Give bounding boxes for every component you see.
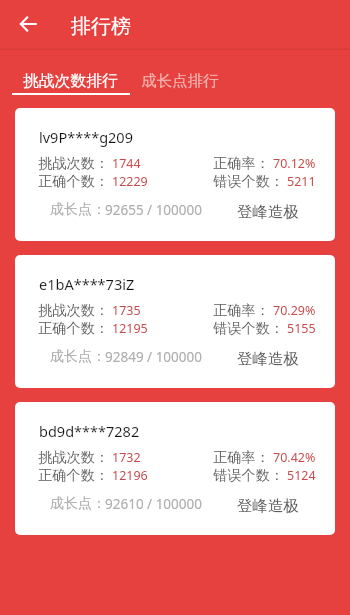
staticText: 5124: [287, 467, 316, 484]
staticText: lv9P****g209: [39, 127, 133, 147]
staticText: bd9d****7282: [39, 421, 140, 441]
staticText: 92849 / 100000: [105, 348, 202, 366]
staticText: 登峰造极: [237, 496, 299, 516]
staticText: e1bA****73iZ: [39, 274, 135, 294]
staticText: 92655 / 100000: [105, 201, 202, 219]
button[interactable]: Back: [8, 4, 48, 44]
button[interactable]: e1bA****73iZ: [15, 255, 335, 388]
staticText: 12195: [112, 320, 148, 337]
button[interactable]: 成长点排行: [132, 50, 228, 94]
staticText: 92610 / 100000: [105, 495, 202, 513]
staticText: 挑战次数：: [38, 301, 109, 319]
staticText: 挑战次数：: [38, 154, 109, 172]
staticText: 正确率：: [213, 154, 270, 172]
staticText: 1735: [112, 302, 141, 319]
staticText: 12229: [112, 173, 148, 190]
button[interactable]: lv9P****g209: [15, 108, 335, 241]
staticText: 70.29%: [273, 302, 316, 319]
staticText: 1732: [112, 449, 141, 466]
staticText: 正确个数：: [38, 319, 109, 337]
staticText: 排行榜: [71, 14, 131, 39]
staticText: 成长点排行: [141, 71, 219, 91]
staticText: 成长点：: [50, 348, 106, 366]
staticText: 成长点：: [50, 201, 106, 219]
button[interactable]: bd9d****7282: [15, 402, 335, 535]
staticText: 正确率：: [213, 301, 270, 319]
staticText: 12196: [112, 467, 148, 484]
staticText: 挑战次数排行: [23, 71, 118, 91]
staticText: 70.12%: [273, 155, 316, 172]
staticText: 正确率：: [213, 448, 270, 466]
staticText: 登峰造极: [237, 202, 299, 222]
staticText: 登峰造极: [237, 349, 299, 369]
staticText: 正确个数：: [38, 172, 109, 190]
button[interactable]: 挑战次数排行: [14, 50, 127, 94]
staticText: 5211: [287, 173, 316, 190]
staticText: 5155: [287, 320, 316, 337]
staticText: 正确个数：: [38, 466, 109, 484]
staticText: 成长点：: [50, 495, 106, 513]
staticText: 错误个数：: [213, 466, 284, 484]
staticText: 错误个数：: [213, 172, 284, 190]
staticText: 1744: [112, 155, 141, 172]
staticText: 错误个数：: [213, 319, 284, 337]
staticText: 挑战次数：: [38, 448, 109, 466]
staticText: 70.42%: [273, 449, 316, 466]
